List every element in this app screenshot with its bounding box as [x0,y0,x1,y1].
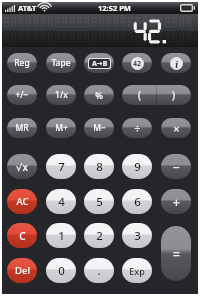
button[interactable]: ) [156,85,191,105]
staticText: 9 [134,159,141,175]
staticText: A→B [92,59,108,68]
staticText: 7 [58,159,65,175]
button[interactable]: ( [122,85,156,105]
button[interactable]: 1 [46,223,76,248]
button[interactable]: 5 [84,189,114,214]
staticText: 12:52 PM [98,3,131,13]
button[interactable]: × [161,118,191,138]
button[interactable]: = [161,226,191,281]
button[interactable]: − [161,154,191,179]
button[interactable]: . [84,258,114,283]
staticText: 4 [58,194,65,210]
staticText: 6 [134,194,141,210]
staticText: MR [15,122,29,134]
staticText: − [173,159,180,175]
staticText: Tape [51,57,71,69]
button[interactable]: Reg [7,53,37,73]
button[interactable]: 4 [46,189,76,214]
button[interactable]: M+ [46,118,76,138]
button[interactable]: % [84,85,114,105]
staticText: M− [93,122,106,134]
button[interactable]: Tape [46,53,76,73]
button[interactable]: AC [7,189,37,214]
staticText: Del [15,264,30,277]
staticText: + [173,194,180,210]
staticText: 8 [96,159,103,175]
staticText: √x [16,160,28,174]
button[interactable]: 9 [122,154,152,179]
staticText: AC [16,195,29,208]
staticText: i [175,58,179,70]
staticText: × [173,121,180,136]
button[interactable]: Exp [122,258,152,283]
button[interactable]: +/− [7,85,37,105]
button[interactable]: ÷ [122,118,152,138]
button[interactable]: Info [161,53,191,73]
staticText: AT&T [18,3,37,13]
button[interactable]: + [161,189,191,214]
staticText: % [95,89,103,101]
button[interactable]: √x [7,154,37,179]
staticText: Reg [14,57,30,69]
button[interactable]: A→B [84,53,114,73]
staticText: Exp [129,265,145,277]
button[interactable]: 7 [46,154,76,179]
button[interactable]: 0 [46,258,76,283]
button[interactable]: 8 [84,154,114,179]
staticText: 0 [58,263,65,279]
staticText: 5 [96,194,103,210]
staticText: ( [138,88,141,102]
staticText: C [19,229,26,243]
staticText: +/− [15,89,29,101]
button[interactable]: 3 [122,223,152,248]
staticText: 1/x [55,89,68,101]
button[interactable]: 42 [122,53,152,73]
button[interactable]: C [7,223,37,248]
button[interactable]: Del [7,258,37,283]
button[interactable]: 2 [84,223,114,248]
staticText: 2 [96,228,103,244]
staticText: 3 [134,228,141,244]
staticText: 1 [58,228,65,244]
button[interactable]: M− [84,118,114,138]
button[interactable]: MR [7,118,37,138]
button[interactable]: 1/x [46,85,76,105]
button[interactable]: 6 [122,189,152,214]
staticText: . [97,263,101,279]
staticText: = [173,246,180,262]
staticText: M+ [55,122,68,134]
staticText: 42 [133,59,142,69]
staticText: ) [172,88,175,102]
staticText: ÷ [134,121,141,136]
